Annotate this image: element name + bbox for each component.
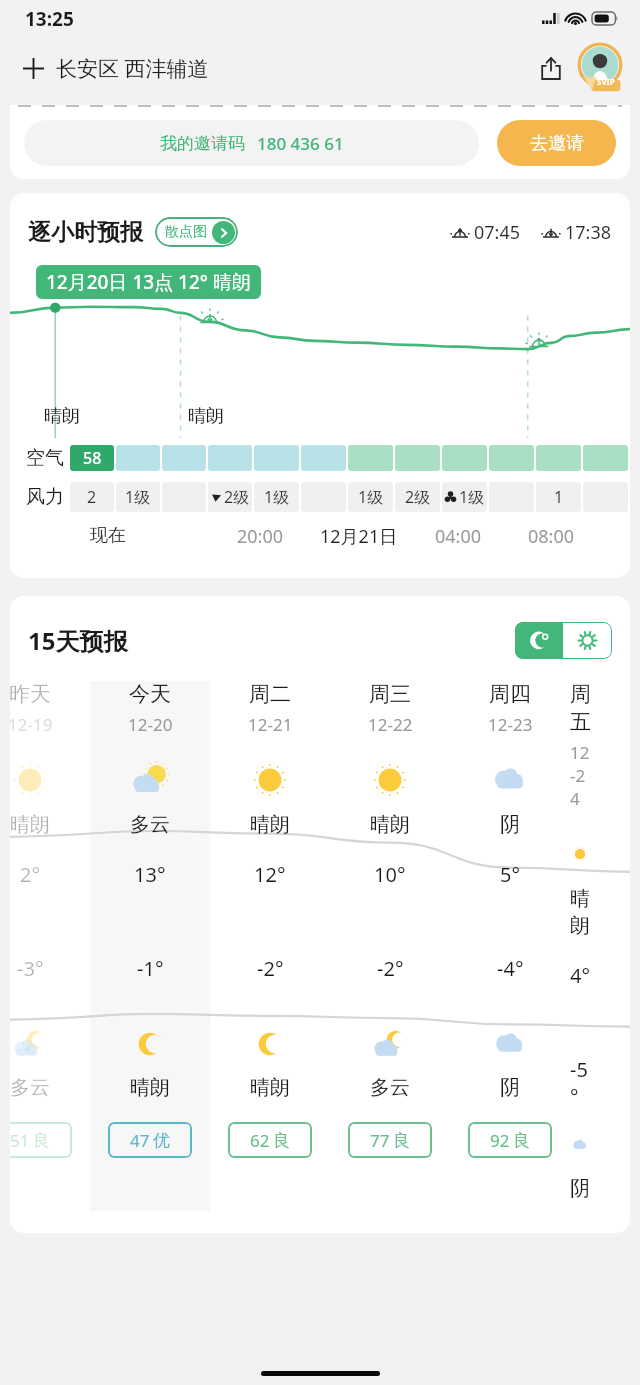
button[interactable]: 周四 [450, 681, 570, 1211]
staticText: 13:25 [25, 6, 74, 32]
button[interactable] [348, 445, 393, 471]
button[interactable] [301, 445, 346, 471]
staticText: 阴 [500, 812, 520, 837]
button[interactable]: Add city [16, 51, 50, 85]
staticText: 多云 [130, 812, 170, 837]
staticText: -5° [570, 1056, 590, 1096]
staticText: -2° [377, 955, 404, 982]
button[interactable]: 2 [70, 482, 114, 512]
staticText: 15天预报 [28, 624, 128, 657]
button[interactable]: Profile [574, 42, 626, 94]
button[interactable]: 58 [70, 445, 114, 471]
staticText: -3° [17, 955, 44, 982]
staticText: 92 [490, 1129, 510, 1152]
staticText: 12月20日 13点 12° 晴朗 [46, 269, 251, 295]
staticText: 2级 [224, 486, 250, 508]
button[interactable]: 去邀请 [497, 120, 616, 166]
button[interactable]: 今天 [90, 681, 210, 1211]
staticText: 散点图 [165, 223, 207, 241]
button[interactable]: 62 [228, 1122, 312, 1158]
button[interactable]: 77 [348, 1122, 432, 1158]
staticText: 晴朗 [188, 405, 224, 428]
button[interactable] [254, 445, 299, 471]
staticText: 晴朗 [10, 812, 50, 837]
staticText: 我的邀请码 [160, 133, 245, 154]
button[interactable] [583, 445, 628, 471]
button[interactable]: 周二 [210, 681, 330, 1211]
button[interactable]: 散点图 [165, 217, 235, 247]
staticText: 17:38 [565, 220, 612, 245]
staticText: 今天 [129, 681, 171, 707]
staticText: 12-21 [248, 713, 293, 736]
staticText: 04:00 [435, 524, 482, 549]
staticText: SVIP [597, 76, 615, 87]
staticText: 良 [513, 1130, 530, 1151]
staticText: 晴朗 [250, 812, 290, 837]
button[interactable]: 周三 [330, 681, 450, 1211]
button[interactable]: 1级 [254, 482, 299, 512]
staticText: 2级 [405, 486, 431, 508]
staticText: 周五 [570, 681, 590, 735]
staticText: 2 [87, 486, 97, 508]
button[interactable]: 47 [108, 1122, 192, 1158]
button[interactable] [395, 445, 440, 471]
button[interactable]: 昨天 [10, 681, 90, 1211]
button[interactable]: 51 [10, 1122, 72, 1158]
staticText: 良 [273, 1130, 290, 1151]
staticText: 12-19 [10, 713, 53, 736]
staticText: 去邀请 [530, 132, 584, 155]
button[interactable] [536, 445, 581, 471]
staticText: 1级 [264, 486, 290, 508]
button[interactable] [162, 445, 206, 471]
button[interactable]: 1 [536, 482, 581, 512]
staticText: 多云 [370, 1075, 410, 1100]
button[interactable]: Night [515, 622, 563, 659]
button[interactable] [442, 445, 487, 471]
staticText: -4° [497, 955, 524, 982]
button[interactable] [489, 445, 534, 471]
staticText: 晴朗 [250, 1075, 290, 1100]
button[interactable]: 1级 [348, 482, 393, 512]
staticText: 1级 [358, 486, 384, 508]
button[interactable]: 1级 [442, 482, 487, 512]
staticText: 180 436 61 [257, 132, 344, 155]
staticText: 08:00 [528, 524, 575, 549]
staticText: 12° [254, 861, 286, 888]
button[interactable] [116, 445, 160, 471]
staticText: 晴朗 [130, 1075, 170, 1100]
staticText: 4° [570, 962, 590, 989]
staticText: 良 [393, 1130, 410, 1151]
staticText: 空气 [26, 446, 64, 470]
staticText: 12-24 [570, 741, 590, 810]
button[interactable]: 92 [468, 1122, 552, 1158]
staticText: 晴朗 [370, 812, 410, 837]
button[interactable]: Day [563, 622, 612, 659]
staticText: 12-22 [368, 713, 413, 736]
button[interactable]: 周五 [570, 681, 590, 1211]
button[interactable]: 我的邀请码 [24, 120, 479, 166]
staticText: 1级 [459, 486, 485, 508]
staticText: 20:00 [237, 524, 284, 549]
button[interactable] [208, 445, 252, 471]
staticText: -1° [137, 955, 164, 982]
staticText: 1 [554, 486, 564, 508]
button[interactable]: 1级 [116, 482, 160, 512]
staticText: 优 [153, 1130, 170, 1151]
staticText: 阴 [500, 1075, 520, 1100]
staticText: 良 [33, 1130, 50, 1151]
staticText: 47 [130, 1129, 150, 1152]
staticText: 晴朗 [570, 886, 590, 938]
button[interactable]: 2级 [208, 482, 252, 512]
button[interactable]: Share [532, 49, 570, 87]
staticText: 逐小时预报 [28, 218, 143, 247]
staticText: 12月21日 [320, 524, 398, 549]
button[interactable]: 长安区 西沣辅道 [56, 54, 209, 83]
staticText: 现在 [90, 524, 126, 547]
staticText: 12-23 [488, 713, 533, 736]
staticText: 62 [250, 1129, 270, 1152]
button[interactable]: 2级 [395, 482, 440, 512]
